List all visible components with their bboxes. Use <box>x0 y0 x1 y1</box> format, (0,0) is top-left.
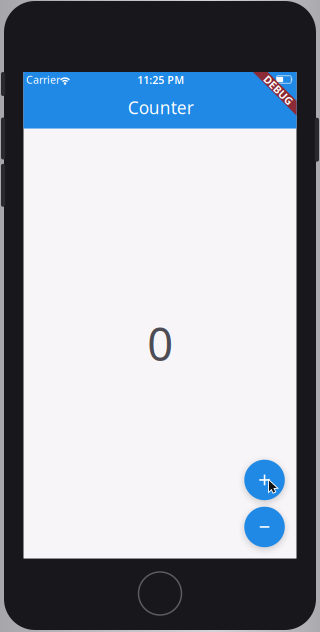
staticText: DEBUG <box>260 83 297 97</box>
staticText: Carrier <box>26 72 60 87</box>
button[interactable]: Increment <box>244 460 285 500</box>
staticText: 11:25 PM <box>137 73 184 87</box>
staticText: 0 <box>147 313 173 374</box>
staticText: Counter <box>128 96 194 119</box>
button[interactable]: Decrement <box>244 507 285 547</box>
